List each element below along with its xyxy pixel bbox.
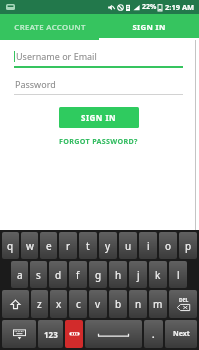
staticText: Password	[15, 78, 56, 90]
button[interactable]: g	[89, 261, 107, 288]
staticText: p	[185, 239, 192, 253]
staticText: z	[37, 297, 42, 311]
staticText: DEL	[179, 297, 189, 304]
staticText: l	[177, 268, 180, 282]
staticText: t	[86, 239, 90, 253]
button[interactable]: d	[49, 261, 67, 288]
staticText: s	[36, 268, 41, 282]
staticText: 22%	[142, 2, 157, 12]
staticText: a	[17, 268, 23, 282]
button[interactable]: k	[149, 261, 167, 288]
button[interactable]: Shift	[2, 290, 29, 318]
button[interactable]: i	[139, 232, 157, 259]
button[interactable]: z	[31, 290, 48, 318]
button[interactable]: Space	[85, 320, 142, 348]
staticText: o	[165, 239, 172, 253]
button[interactable]: j	[129, 261, 147, 288]
button[interactable]: Username or Email	[14, 50, 183, 68]
button[interactable]: r	[59, 232, 77, 259]
staticText: w	[26, 239, 34, 253]
button[interactable]: m	[149, 290, 167, 318]
button[interactable]: u	[119, 232, 137, 259]
button[interactable]: b	[109, 290, 127, 318]
staticText: h	[115, 268, 122, 282]
staticText: c	[76, 297, 81, 311]
button[interactable]: t	[79, 232, 97, 259]
button[interactable]: Password	[14, 78, 183, 95]
staticText: SIGN IN	[81, 112, 117, 123]
button[interactable]: y	[99, 232, 117, 259]
button[interactable]: Hide keyboard	[2, 320, 36, 348]
staticText: r	[66, 239, 71, 253]
button[interactable]: SIGN IN	[59, 107, 139, 128]
button[interactable]: .	[144, 320, 163, 348]
staticText: FORGOT PASSWORD?	[59, 136, 138, 146]
button[interactable]: CREATE ACCOUNT	[0, 14, 99, 40]
staticText: 123	[44, 329, 58, 340]
staticText: j	[137, 268, 140, 282]
button[interactable]: q	[2, 232, 19, 259]
staticText: y	[105, 239, 111, 253]
button[interactable]: s	[30, 261, 47, 288]
staticText: u	[125, 239, 132, 253]
button[interactable]: f	[69, 261, 87, 288]
staticText: k	[155, 268, 161, 282]
staticText: CREATE ACCOUNT	[14, 22, 86, 33]
staticText: m	[153, 297, 163, 311]
staticText: Username or Email	[16, 50, 97, 62]
button[interactable]: FORGOT PASSWORD?	[55, 134, 142, 148]
button[interactable]: o	[159, 232, 177, 259]
staticText: x	[56, 297, 62, 311]
staticText: .	[152, 328, 155, 340]
button[interactable]: c	[69, 290, 87, 318]
button[interactable]: h	[109, 261, 127, 288]
staticText: 2:19 AM	[165, 2, 195, 12]
button[interactable]: v	[89, 290, 107, 318]
staticText: f	[76, 268, 80, 282]
staticText: d	[55, 268, 62, 282]
button[interactable]: 123	[38, 320, 63, 348]
staticText: q	[7, 239, 14, 253]
button[interactable]: x	[50, 290, 67, 318]
button[interactable]: a	[11, 261, 28, 288]
button[interactable]: w	[21, 232, 38, 259]
staticText: i	[147, 239, 150, 253]
staticText: e	[46, 239, 52, 253]
staticText: g	[95, 268, 102, 282]
button[interactable]: p	[179, 232, 197, 259]
button[interactable]: Emoji	[65, 320, 83, 348]
button[interactable]: l	[169, 261, 187, 288]
button[interactable]: Next	[165, 320, 197, 348]
button[interactable]: Delete	[169, 290, 197, 318]
staticText: SIGN IN	[132, 22, 166, 33]
button[interactable]: n	[129, 290, 147, 318]
button[interactable]: e	[40, 232, 57, 259]
staticText: Next	[173, 329, 190, 339]
staticText: n	[135, 297, 142, 311]
staticText: v	[95, 297, 101, 311]
button[interactable]: SIGN IN	[99, 14, 199, 40]
staticText: b	[115, 297, 122, 311]
